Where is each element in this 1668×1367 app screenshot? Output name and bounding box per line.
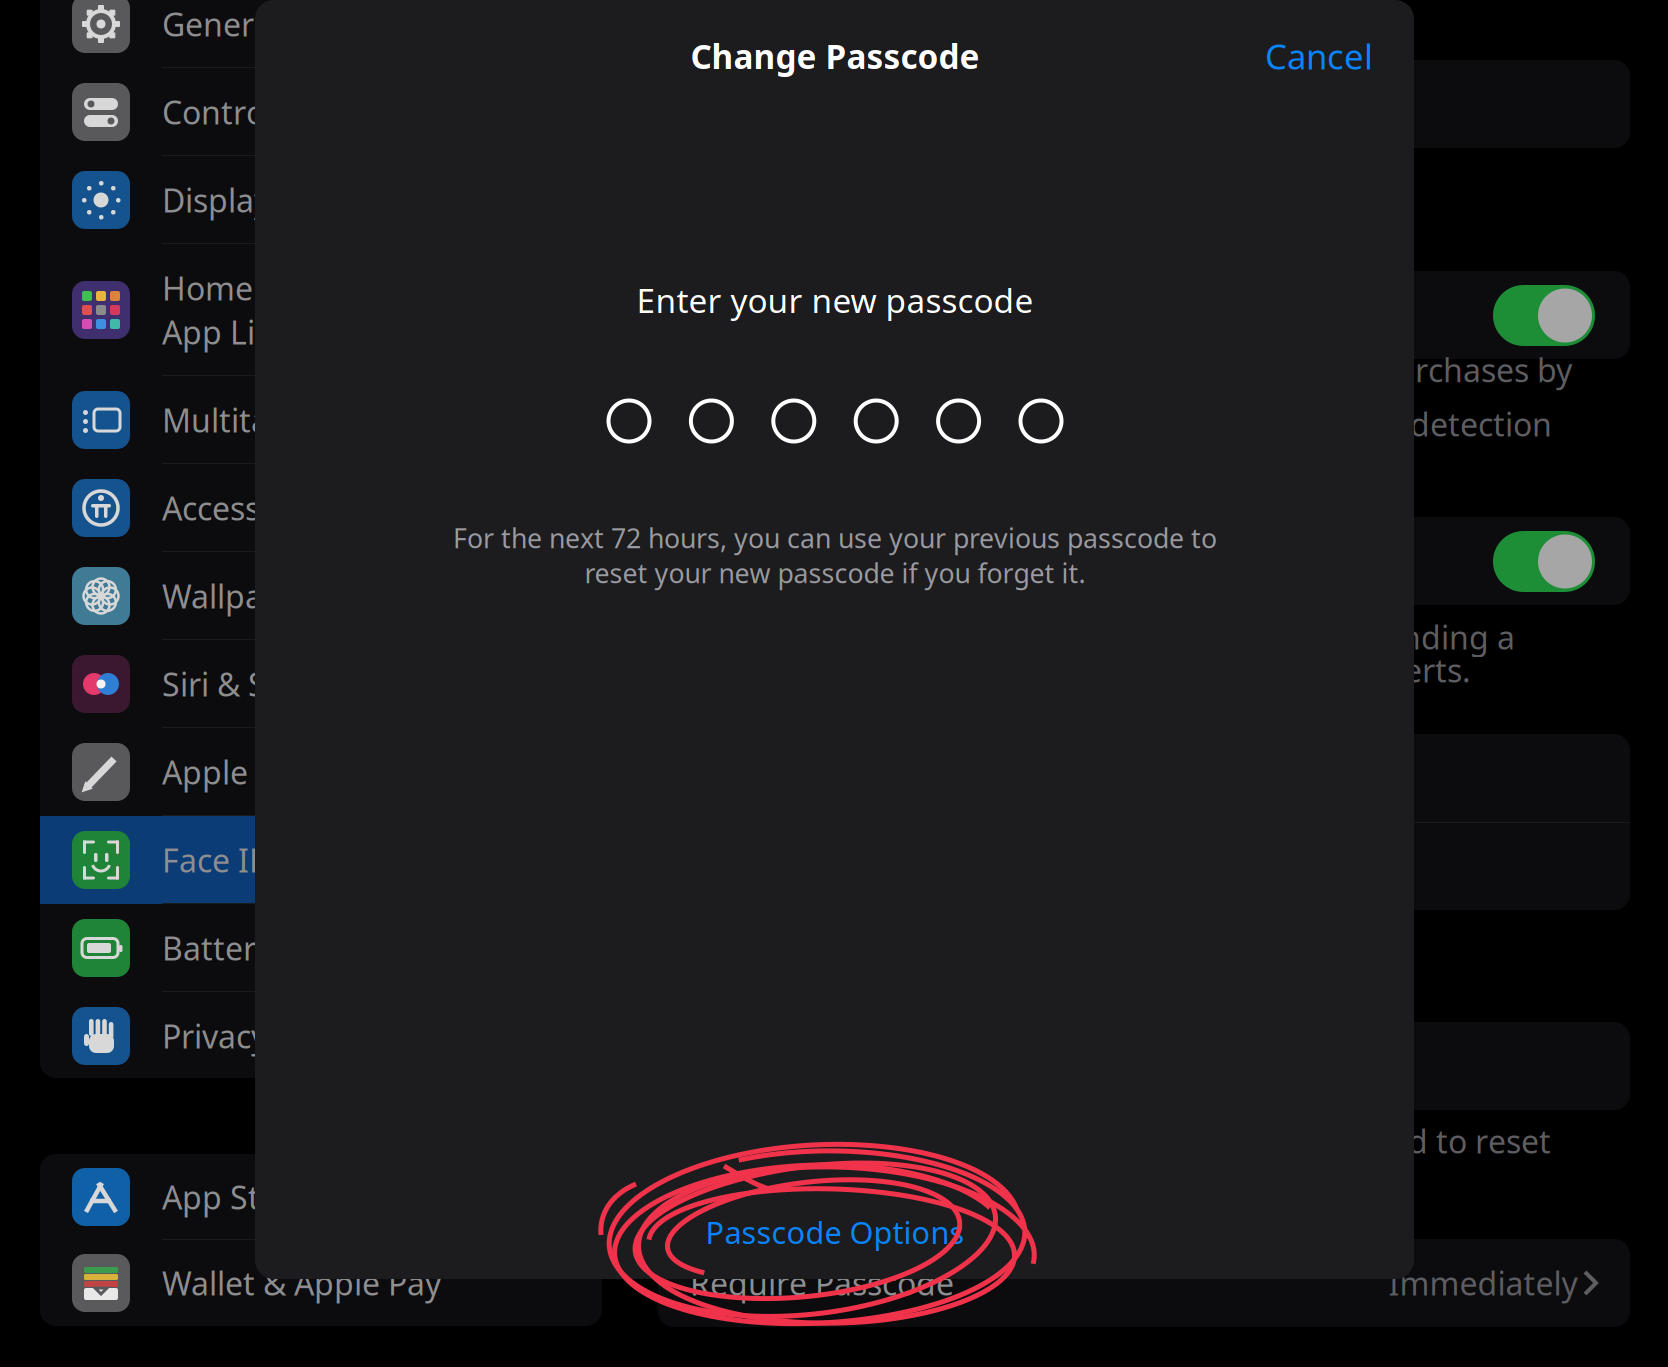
staticText: Show details on the Lock Screen only aft… <box>690 616 1515 658</box>
staticText: Control Centre <box>162 91 382 133</box>
staticText: Use Face ID to unlock your iPad, authent… <box>690 348 1572 433</box>
button[interactable]: Turn Passcode Off <box>0 0 1668 1367</box>
button[interactable]: Face ID & Passcode <box>0 0 1668 1367</box>
staticText: General <box>162 3 280 45</box>
staticText: Wallet & Apple Pay <box>162 1262 441 1304</box>
button[interactable]: Siri & Search <box>0 0 1668 1367</box>
button[interactable]: Face ID for iPad Unlock <box>0 0 1668 1367</box>
button[interactable]: Show notification previews <box>0 0 1668 1367</box>
staticText: Battery <box>162 927 272 969</box>
button[interactable]: Privacy & Security <box>0 0 1668 1367</box>
staticText: Your Apple Account password will also be… <box>690 1120 1551 1162</box>
staticText: Require Passcode <box>690 1262 954 1304</box>
staticText: Change Passcode <box>690 34 979 78</box>
button[interactable]: Passcode Options <box>0 0 1668 1367</box>
staticText: Passcode Options <box>705 1212 964 1252</box>
button[interactable]: Display & Brightness <box>0 0 1668 1367</box>
button[interactable]: Cancel <box>0 0 1668 1367</box>
staticText: to apps and more. Face ID works with Att… <box>690 403 1552 445</box>
button[interactable]: Battery <box>0 0 1668 1367</box>
button[interactable]: Multitasking & Gestures <box>0 0 1668 1367</box>
staticText: Enter your new passcode <box>636 278 1033 322</box>
button[interactable]: Accessibility <box>0 0 1668 1367</box>
button[interactable]: Password AutoFill <box>0 0 1668 1367</box>
button[interactable]: App Store <box>0 0 1668 1367</box>
staticText: Home Screen & <box>162 267 394 309</box>
staticText: Display & Brightness <box>162 179 471 221</box>
staticText: Apple Pencil <box>162 751 344 793</box>
staticText: reset your new passcode if you forget it… <box>584 555 1085 591</box>
button[interactable]: Home Screen & <box>0 0 1668 1367</box>
button[interactable]: Apple Pencil <box>0 0 1668 1367</box>
button[interactable]: Wallet & Apple Pay <box>0 0 1668 1367</box>
button[interactable]: Control Centre <box>0 0 1668 1367</box>
staticText: notification, unlocking your iPad, or ac… <box>690 649 1471 691</box>
button[interactable]: Wallpaper <box>0 0 1668 1367</box>
staticText: Siri & Search <box>162 663 350 705</box>
staticText: Multitasking & Gestures <box>162 399 522 441</box>
button[interactable]: iTunes & App Store <box>0 0 1668 1367</box>
staticText: App Store <box>162 1176 310 1218</box>
staticText: Face ID & Passcode <box>162 839 450 881</box>
staticText: Immediately <box>1388 1262 1577 1304</box>
button[interactable]: General <box>0 0 1668 1367</box>
staticText: Privacy & Security <box>162 1015 426 1057</box>
staticText: For the next 72 hours, you can use your … <box>453 520 1217 556</box>
button[interactable]: Require Passcode <box>0 0 1668 1367</box>
staticText: Cancel <box>1265 33 1373 79</box>
staticText: Accessibility <box>162 487 340 529</box>
button[interactable]: Set Up Face ID <box>0 0 1668 1367</box>
staticText: Wallpaper <box>162 575 314 617</box>
staticText: App Library <box>162 311 335 353</box>
